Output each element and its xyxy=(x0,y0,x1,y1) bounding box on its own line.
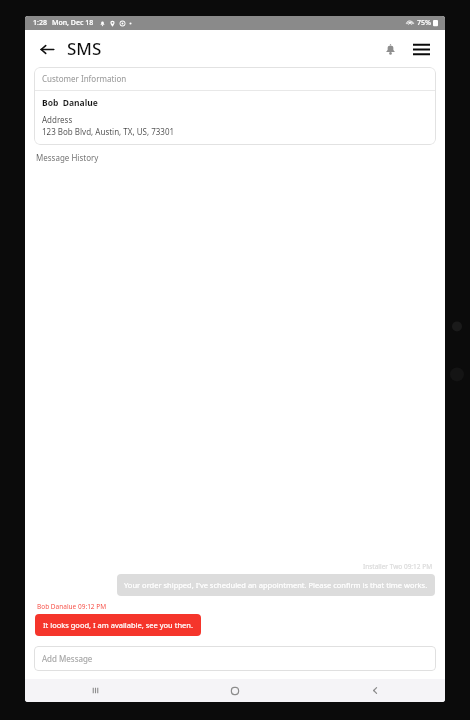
staticText: Add Message xyxy=(42,653,93,664)
button[interactable]: Your order shipped, I've scheduled an ap… xyxy=(117,574,435,596)
staticText: Installer Two 09:12 PM xyxy=(363,562,433,571)
staticText: Customer Information xyxy=(42,73,127,84)
staticText: It looks good, I am available, see you t… xyxy=(43,620,193,630)
button[interactable]: Home xyxy=(165,679,305,702)
button[interactable]: Menu xyxy=(405,33,437,65)
button[interactable]: Add Message xyxy=(34,646,436,671)
button[interactable]: It looks good, I am available, see you t… xyxy=(35,614,201,636)
staticText: SMS xyxy=(67,37,102,60)
button[interactable]: Notifications xyxy=(375,34,405,64)
staticText: Bob Danalue 09:12 PM xyxy=(37,602,107,611)
staticText: Message History xyxy=(36,152,99,163)
button[interactable]: Recent apps xyxy=(25,679,165,702)
staticText: 123 Bob Blvd, Austin, TX, US, 73301 xyxy=(42,126,175,137)
button[interactable]: Back xyxy=(305,679,445,702)
staticText: Address xyxy=(42,114,73,125)
staticText: 75% xyxy=(417,18,431,28)
staticText: Mon, Dec 18 xyxy=(52,18,94,28)
button[interactable]: Customer Information xyxy=(34,67,436,145)
button[interactable]: Back xyxy=(33,35,61,63)
staticText: 1:28 xyxy=(33,18,47,28)
staticText: Your order shipped, I've scheduled an ap… xyxy=(124,580,428,590)
staticText: Bob Danalue xyxy=(42,97,98,109)
